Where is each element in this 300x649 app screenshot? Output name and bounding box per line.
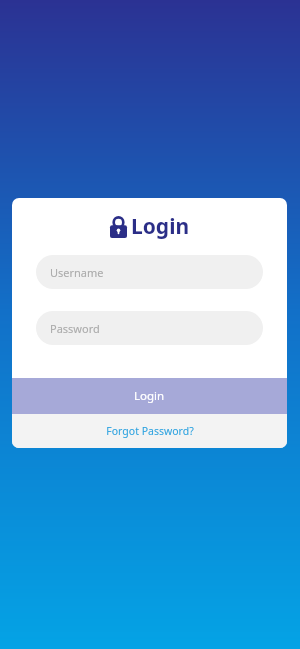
button[interactable]: Login (12, 378, 287, 414)
button[interactable]: Username (36, 255, 263, 289)
staticText: Username (50, 265, 104, 280)
button[interactable]: Forgot Password? (12, 414, 287, 448)
staticText: Login (131, 212, 190, 241)
button[interactable]: Password (36, 311, 263, 345)
staticText: Forgot Password? (106, 424, 194, 438)
other: Lock (110, 216, 127, 238)
staticText: Password (50, 321, 100, 336)
staticText: Login (134, 388, 165, 404)
